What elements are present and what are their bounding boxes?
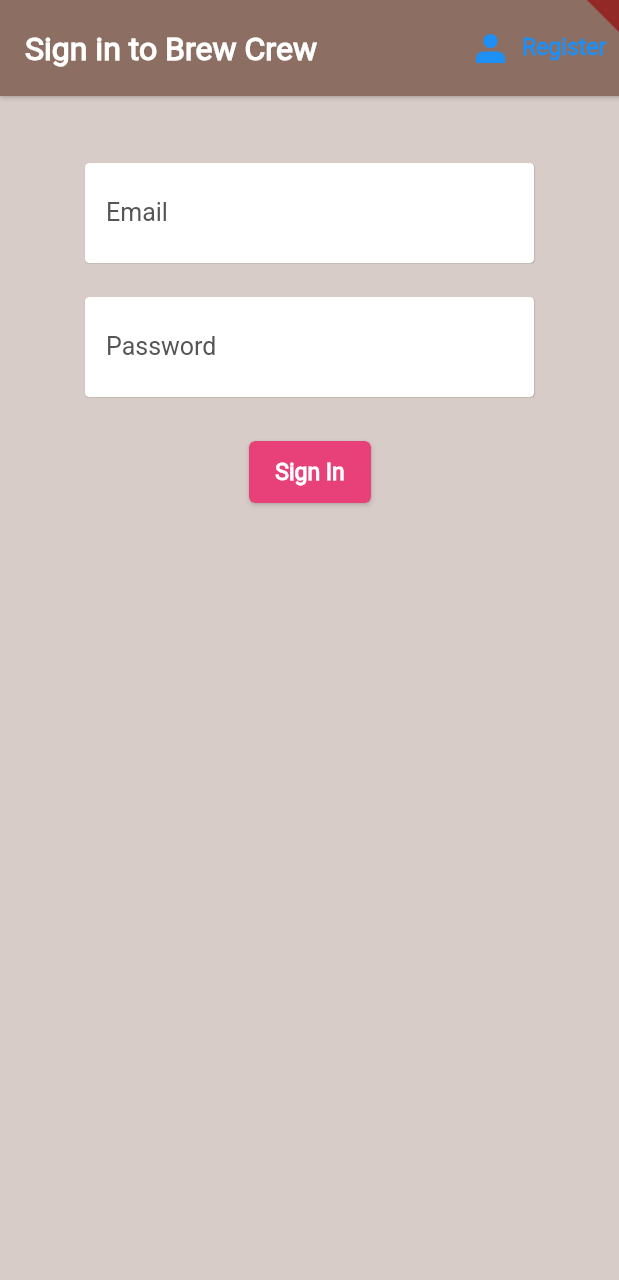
staticText: Sign In	[275, 459, 345, 486]
button[interactable]: Password	[85, 297, 534, 397]
staticText: Sign in to Brew Crew	[25, 30, 317, 68]
button[interactable]: Email	[85, 163, 534, 263]
staticText: Register	[522, 34, 607, 61]
staticText: Password	[106, 332, 217, 361]
button[interactable]: Register account	[476, 33, 607, 63]
staticText: Email	[106, 198, 168, 227]
other: Register account	[476, 33, 505, 63]
button[interactable]: Sign In	[249, 441, 371, 503]
